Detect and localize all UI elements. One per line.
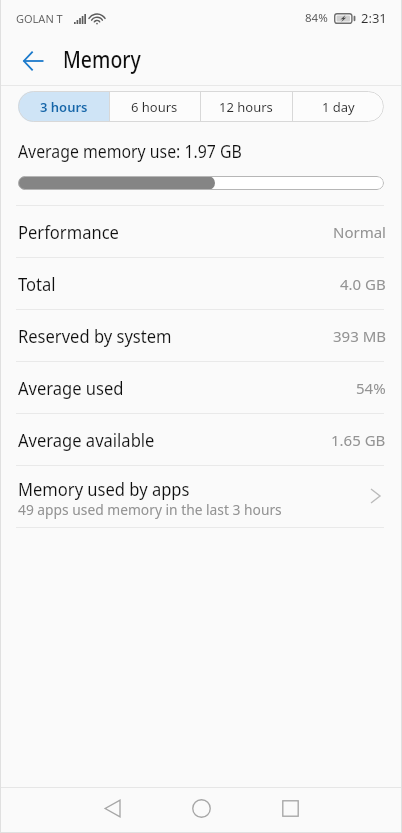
staticText: 6 hours bbox=[131, 98, 178, 116]
button[interactable]: 12 hours bbox=[200, 91, 292, 122]
button[interactable]: Total bbox=[0, 258, 402, 310]
staticText: 84% bbox=[305, 10, 328, 26]
button[interactable]: 3 hours bbox=[18, 91, 109, 122]
staticText: 54% bbox=[356, 378, 386, 398]
staticText: Normal bbox=[333, 222, 386, 242]
button[interactable]: Memory used by apps bbox=[0, 466, 402, 528]
staticText: 49 apps used memory in the last 3 hours bbox=[18, 500, 282, 519]
button[interactable]: Performance bbox=[0, 206, 402, 258]
button[interactable]: 1 day bbox=[292, 91, 384, 122]
staticText: Average used bbox=[18, 376, 124, 400]
button[interactable]: Average used bbox=[0, 362, 402, 414]
button[interactable]: Home bbox=[180, 787, 222, 829]
button[interactable]: 6 hours bbox=[109, 91, 200, 122]
staticText: Performance bbox=[18, 220, 119, 244]
button[interactable]: Recents bbox=[269, 787, 311, 829]
staticText: Average memory use: 1.97 GB bbox=[18, 140, 242, 164]
staticText: 2:31 bbox=[361, 9, 387, 27]
button[interactable]: Back bbox=[91, 787, 133, 829]
staticText: 1 day bbox=[322, 98, 355, 116]
staticText: Reserved by system bbox=[18, 324, 172, 348]
button[interactable]: Reserved by system bbox=[0, 310, 402, 362]
staticText: 4.0 GB bbox=[340, 274, 386, 294]
button[interactable]: Back bbox=[12, 40, 54, 82]
staticText: 393 MB bbox=[333, 326, 386, 346]
staticText: GOLAN T bbox=[16, 11, 63, 26]
staticText: Memory used by apps bbox=[18, 477, 190, 501]
staticText: 3 hours bbox=[40, 98, 88, 116]
staticText: 1.65 GB bbox=[331, 430, 386, 450]
staticText: Memory bbox=[63, 43, 142, 74]
staticText: Average available bbox=[18, 428, 155, 452]
staticText: Total bbox=[18, 272, 56, 296]
staticText: 12 hours bbox=[219, 98, 273, 116]
button[interactable]: Average available bbox=[0, 414, 402, 466]
